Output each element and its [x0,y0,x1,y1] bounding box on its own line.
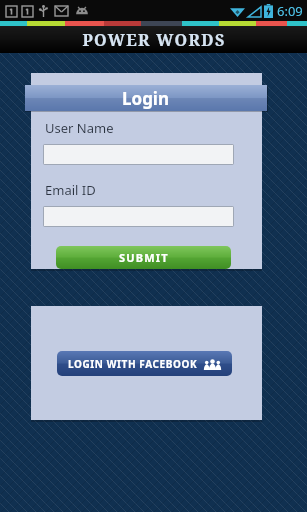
other: Facebook group [204,358,221,370]
staticText: Email ID [45,181,96,199]
button[interactable]: SUBMIT [56,246,231,269]
staticText: 6:09 [277,2,303,20]
button[interactable]: LOGIN WITH FACEBOOK [57,351,232,376]
staticText: Login [122,87,170,110]
staticText: User Name [45,119,114,137]
staticText: POWER WORDS [82,29,226,51]
staticText: SUBMIT [119,250,169,265]
staticText: LOGIN WITH FACEBOOK [68,357,198,371]
